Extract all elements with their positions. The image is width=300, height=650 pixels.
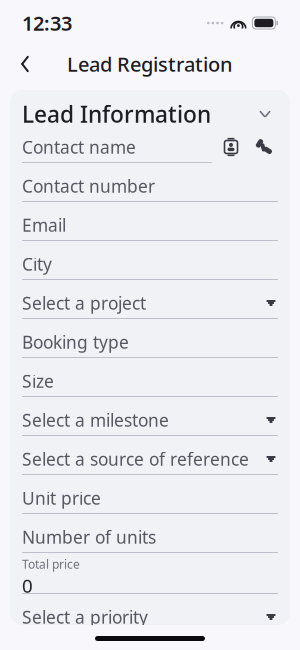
button[interactable]: Number of units [10,522,290,561]
staticText: Email [22,213,66,236]
staticText: Unit price [22,486,101,509]
button[interactable]: Pick from contacts [223,137,239,157]
button[interactable]: Select a project [10,288,290,327]
button[interactable]: Select a milestone [10,405,290,444]
button[interactable]: Collapse Lead Information [252,103,278,125]
button[interactable]: Select a source of reference [10,444,290,483]
staticText: Select a source of reference [22,447,249,470]
staticText: Size [22,369,54,392]
staticText: Number of units [22,525,156,548]
button[interactable]: Contact number [10,171,290,210]
button[interactable]: Email [10,210,290,249]
staticText: Lead Registration [67,51,233,77]
staticText: Booking type [22,330,129,353]
staticText: 12:33 [22,10,72,36]
button[interactable]: City [10,249,290,288]
button[interactable]: Booking type [10,327,290,366]
staticText: City [22,252,52,275]
button[interactable]: Contact name [10,132,290,171]
button[interactable]: Unit price [10,483,290,522]
button[interactable]: Call contact [255,138,272,156]
staticText: Contact number [22,174,155,197]
button[interactable]: Back [6,45,44,83]
staticText: 0 [22,573,33,598]
staticText: Select a priority [22,605,148,628]
staticText: Select a project [22,291,146,314]
staticText: Contact name [22,135,136,158]
staticText: Total price [22,556,80,572]
staticText: Select a milestone [22,408,169,431]
button[interactable]: Select a priority [10,602,290,641]
staticText: Lead Information [22,99,211,129]
button[interactable]: Size [10,366,290,405]
